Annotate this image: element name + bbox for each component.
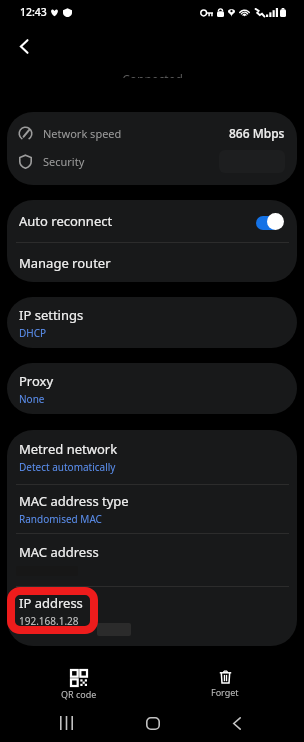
button[interactable]: Auto reconnect bbox=[256, 213, 284, 230]
button[interactable]: Security bbox=[18, 148, 285, 174]
staticText: Detect automatically bbox=[19, 460, 116, 474]
button[interactable]: Network speed bbox=[18, 120, 285, 146]
button[interactable]: Back bbox=[211, 702, 263, 742]
staticText: DHCP bbox=[19, 326, 47, 340]
button[interactable]: Proxy bbox=[7, 363, 297, 414]
button[interactable]: MAC address bbox=[7, 534, 297, 586]
button[interactable]: IP settings bbox=[7, 297, 297, 348]
button[interactable]: Navigate up bbox=[4, 26, 44, 66]
button[interactable]: Recent apps bbox=[40, 702, 92, 742]
staticText: IP settings bbox=[19, 306, 84, 324]
staticText: Metred network bbox=[19, 440, 118, 458]
staticText: Randomised MAC bbox=[19, 512, 102, 526]
button[interactable]: Home bbox=[127, 702, 179, 742]
staticText: QR code bbox=[61, 688, 97, 700]
staticText: Network speed bbox=[43, 126, 122, 141]
staticText: 192.168.1.28 bbox=[19, 614, 79, 628]
staticText: Connected bbox=[122, 71, 183, 78]
staticText: Manage router bbox=[19, 254, 111, 272]
button[interactable]: Auto reconnect bbox=[7, 200, 297, 242]
staticText: Forget bbox=[211, 686, 239, 698]
staticText: 12:43 bbox=[20, 5, 47, 19]
staticText: Security bbox=[43, 154, 85, 169]
staticText: MAC address bbox=[19, 543, 99, 561]
button[interactable]: MAC address type bbox=[7, 485, 297, 533]
button[interactable]: Forget bbox=[157, 663, 293, 701]
staticText: None bbox=[19, 392, 45, 406]
staticText: 866 Mbps bbox=[229, 125, 285, 141]
staticText: IP address bbox=[19, 594, 83, 612]
staticText: MAC address type bbox=[19, 492, 129, 510]
button[interactable]: Metred network bbox=[7, 430, 297, 484]
staticText: Auto reconnect bbox=[19, 212, 113, 230]
button[interactable]: IP address bbox=[7, 587, 297, 646]
staticText: Proxy bbox=[19, 372, 54, 390]
button[interactable]: Manage router bbox=[7, 243, 297, 282]
button[interactable]: QR code bbox=[11, 663, 147, 701]
